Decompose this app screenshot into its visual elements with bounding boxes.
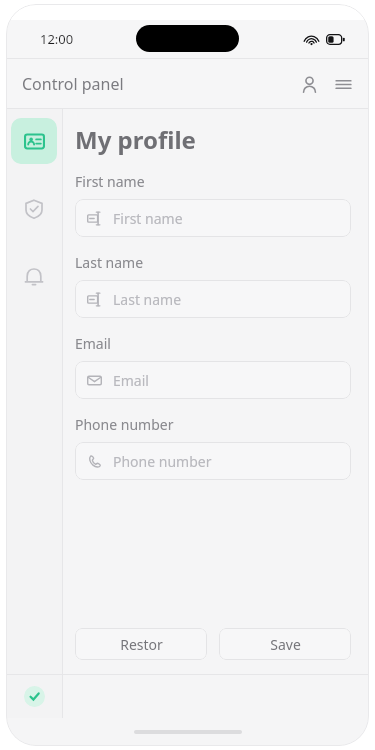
button[interactable]: Account — [293, 68, 325, 100]
button[interactable]: Restor — [75, 628, 207, 660]
staticText: First name — [75, 172, 145, 191]
button[interactable]: Last name — [75, 280, 351, 318]
staticText: Phone number — [75, 415, 174, 434]
button[interactable]: First name — [75, 199, 351, 237]
staticText: Last name — [75, 253, 144, 272]
staticText: First name — [113, 209, 183, 228]
staticText: Restor — [120, 635, 163, 654]
button[interactable]: Security — [11, 186, 57, 232]
button[interactable]: Menu — [327, 68, 359, 100]
staticText: Control panel — [22, 73, 124, 95]
button[interactable]: Notifications — [11, 254, 57, 300]
button[interactable]: Email — [75, 361, 351, 399]
button[interactable]: Phone number — [75, 442, 351, 480]
staticText: Phone number — [113, 452, 212, 471]
staticText: Email — [75, 334, 111, 353]
staticText: 12:00 — [40, 30, 74, 48]
button[interactable]: Save — [219, 628, 351, 660]
button[interactable]: Status ok — [24, 686, 45, 707]
staticText: Email — [113, 371, 149, 390]
staticText: My profile — [75, 123, 196, 156]
button[interactable]: My profile — [11, 118, 57, 164]
staticText: Last name — [113, 290, 182, 309]
staticText: Save — [270, 635, 301, 654]
